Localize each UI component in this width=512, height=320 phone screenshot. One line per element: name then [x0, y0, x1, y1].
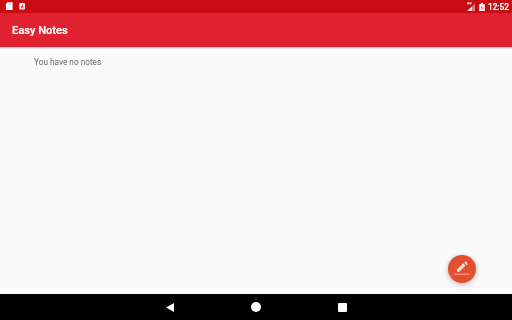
staticText: You have no notes [34, 57, 102, 67]
button[interactable]: New note [448, 255, 476, 283]
staticText: 12:52 [488, 2, 509, 12]
staticText: Easy Notes [12, 24, 68, 37]
button[interactable]: Home [236, 294, 276, 320]
button[interactable]: Recents [322, 294, 362, 320]
button[interactable]: Back [150, 294, 190, 320]
